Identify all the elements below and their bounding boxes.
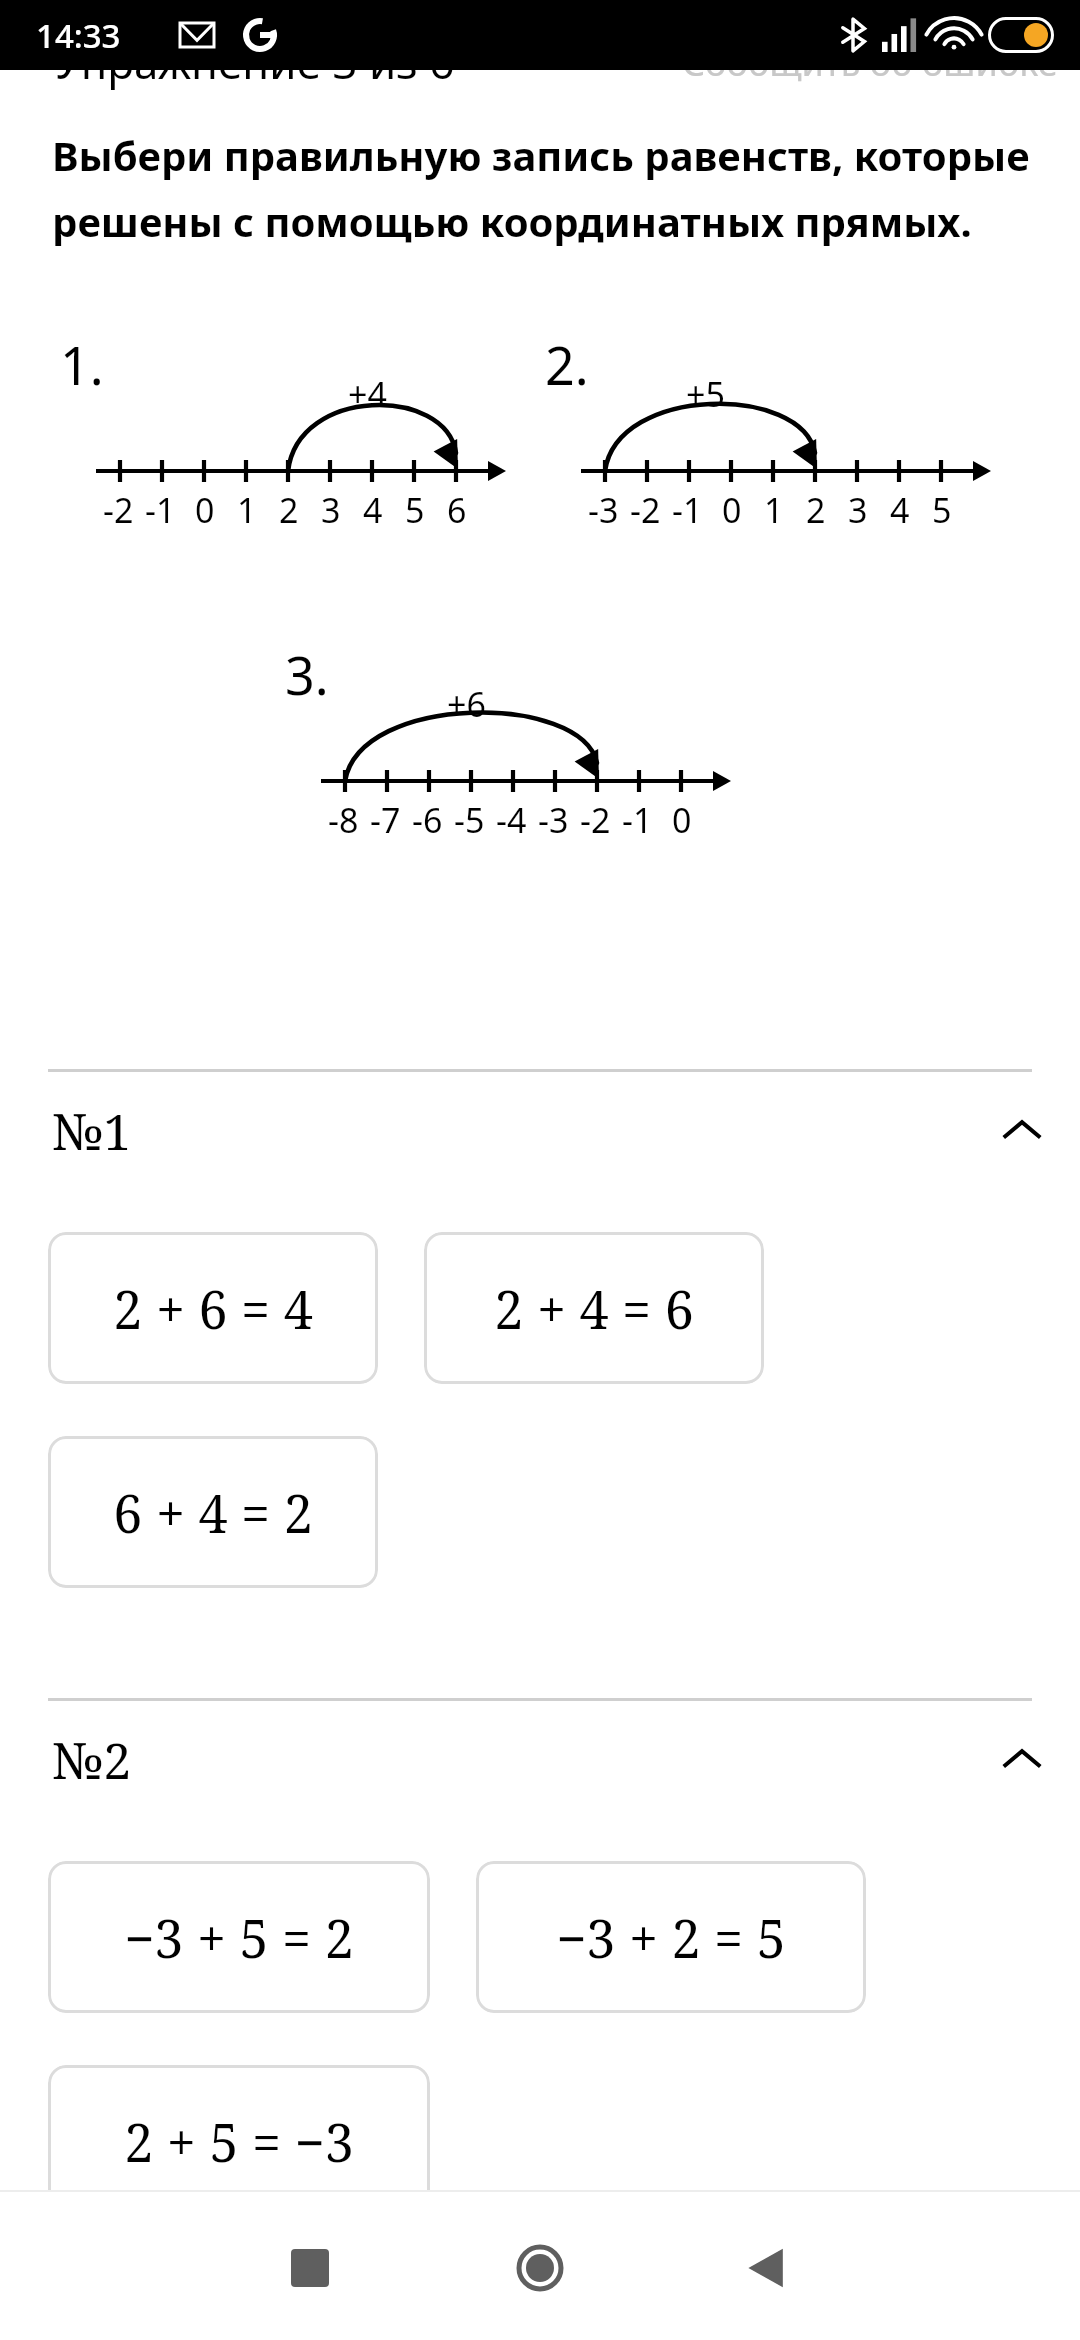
staticText: -2: [630, 487, 661, 533]
staticText: 0: [672, 797, 692, 843]
staticText: Выбери правильную запись равенств, котор…: [52, 128, 1050, 249]
staticText: 1.: [60, 329, 104, 400]
staticText: 4: [890, 487, 910, 533]
staticText: 5: [932, 487, 952, 533]
button[interactable]: Назад: [728, 2230, 804, 2306]
staticText: 2 + 4 = 6: [494, 1273, 694, 1344]
staticText: -7: [370, 797, 401, 843]
staticText: −3 + 5 = 2: [124, 1902, 354, 1973]
staticText: -5: [454, 797, 485, 843]
staticText: 0: [722, 487, 742, 533]
staticText: +4: [348, 371, 387, 417]
staticText: -1: [622, 797, 653, 843]
staticText: №1: [52, 1097, 132, 1165]
staticText: 6: [447, 487, 467, 533]
staticText: 6 + 4 = 2: [113, 1477, 313, 1548]
staticText: 5: [405, 487, 425, 533]
button[interactable]: −3 + 5 = 2: [48, 1861, 430, 2013]
staticText: 1: [237, 487, 257, 533]
button[interactable]: Главный экран: [502, 2230, 578, 2306]
staticText: 3: [848, 487, 868, 533]
staticText: 1: [764, 487, 784, 533]
staticText: -1: [145, 487, 176, 533]
button[interactable]: 2 + 5 = −3: [48, 2065, 430, 2217]
staticText: −3 + 2 = 5: [556, 1902, 786, 1973]
staticText: -2: [103, 487, 134, 533]
button[interactable]: Последние приложения: [272, 2230, 348, 2306]
staticText: +5: [686, 371, 725, 417]
staticText: -1: [672, 487, 703, 533]
staticText: -3: [588, 487, 619, 533]
staticText: 3.: [285, 639, 329, 710]
staticText: Упражнение 3 из 6: [54, 32, 455, 92]
staticText: -8: [328, 797, 359, 843]
staticText: +6: [447, 681, 486, 727]
button[interactable]: Сообщить об ошибке: [682, 38, 1058, 87]
staticText: 14:33: [36, 13, 121, 58]
staticText: -3: [538, 797, 569, 843]
staticText: -4: [496, 797, 527, 843]
staticText: 2: [806, 487, 826, 533]
button[interactable]: №1: [0, 1072, 1080, 1190]
button[interactable]: 2 + 6 = 4: [48, 1232, 378, 1384]
staticText: -6: [412, 797, 443, 843]
button[interactable]: −3 + 2 = 5: [476, 1861, 866, 2013]
staticText: 2 + 6 = 4: [113, 1273, 313, 1344]
button[interactable]: №2: [0, 1701, 1080, 1819]
staticText: №2: [52, 1726, 132, 1794]
other: Свернуть: [1000, 1738, 1044, 1782]
staticText: 3: [321, 487, 341, 533]
button[interactable]: 2 + 4 = 6: [424, 1232, 764, 1384]
staticText: 4: [363, 487, 383, 533]
staticText: 2 + 5 = −3: [124, 2106, 354, 2177]
button[interactable]: 6 + 4 = 2: [48, 1436, 378, 1588]
staticText: 2: [279, 487, 299, 533]
staticText: 0: [195, 487, 215, 533]
staticText: -2: [580, 797, 611, 843]
other: Свернуть: [1000, 1109, 1044, 1153]
staticText: 2.: [545, 329, 589, 400]
